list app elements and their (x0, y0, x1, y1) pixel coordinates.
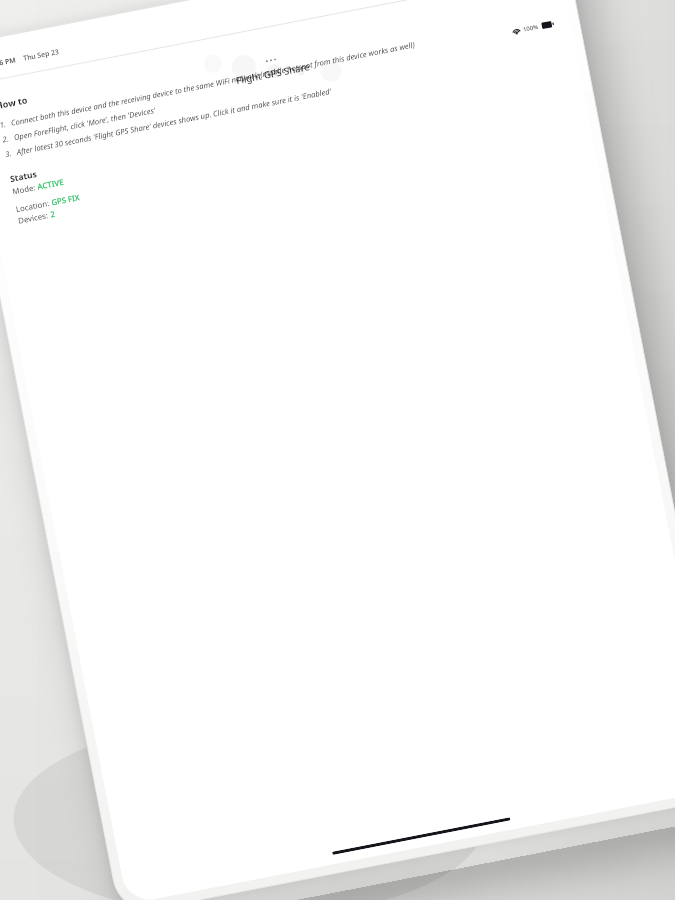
staticText: After latest 30 seconds 'Flight GPS Shar… (16, 85, 333, 157)
staticText: 1. (0, 117, 12, 130)
staticText: How to (0, 94, 29, 112)
staticText: Thu Sep 23 (22, 47, 60, 63)
staticText: Devices: (17, 209, 51, 226)
staticText: Mode: (11, 181, 38, 197)
button[interactable]: Flight GPS Share (220, 48, 324, 91)
staticText: 10:36 PM (0, 55, 17, 70)
staticText: Status (9, 167, 38, 184)
staticText: 2. (1, 132, 15, 145)
staticText: GPS FIX (50, 192, 80, 208)
staticText: 100% (522, 22, 539, 34)
staticText: Open ForeFlight, click 'More', then 'Dev… (13, 104, 156, 142)
staticText: Location: (15, 197, 52, 214)
staticText: 3. (4, 147, 18, 159)
staticText: ACTIVE (36, 176, 64, 192)
staticText: Connect both this device and the receivi… (10, 39, 416, 128)
staticText: Flight GPS Share (235, 59, 311, 86)
staticText: 2 (49, 208, 57, 220)
other: Wi-Fi and battery status (512, 20, 554, 36)
